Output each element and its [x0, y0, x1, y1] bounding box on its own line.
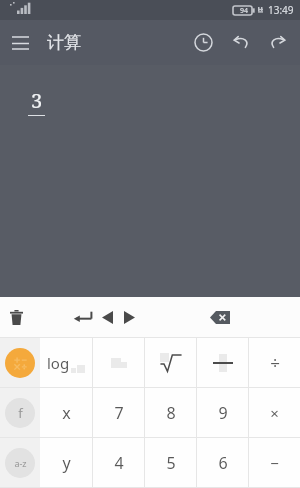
button[interactable]: 5 — [145, 438, 196, 487]
staticText: y — [62, 452, 71, 474]
staticText: 9 — [218, 402, 228, 424]
staticText: x — [62, 402, 71, 424]
button[interactable]: Undo — [222, 20, 259, 65]
staticText: 6 — [218, 452, 228, 474]
staticText: × — [270, 403, 279, 423]
button[interactable]: log — [40, 338, 92, 387]
button[interactable]: x — [40, 388, 92, 437]
button[interactable]: Delete all — [0, 297, 33, 337]
staticText: 8 — [166, 402, 176, 424]
staticText: f — [18, 404, 23, 422]
button[interactable]: − — [249, 438, 300, 487]
button[interactable]: Backspace — [140, 297, 300, 337]
button[interactable] — [197, 338, 248, 387]
staticText: 7 — [114, 402, 124, 424]
button[interactable]: History — [185, 20, 222, 65]
button[interactable]: y — [40, 438, 92, 487]
button[interactable]: Menu — [0, 23, 40, 63]
button[interactable]: a-z — [5, 448, 35, 478]
button[interactable]: 4 — [93, 438, 144, 487]
button[interactable]: 6 — [197, 438, 248, 487]
button[interactable]: 8 — [145, 388, 196, 437]
staticText: 5 — [166, 452, 176, 474]
staticText: 计算 — [47, 32, 81, 53]
button[interactable] — [93, 338, 144, 387]
staticText: 4 — [114, 452, 124, 474]
button[interactable]: Move left — [96, 297, 118, 337]
button[interactable] — [145, 338, 196, 387]
staticText: ÷ — [270, 351, 280, 374]
button[interactable]: ÷ — [249, 338, 300, 387]
staticText: 3 — [31, 87, 43, 114]
staticText: 13:49 — [268, 3, 294, 17]
button[interactable]: Enter — [69, 297, 96, 337]
staticText: log — [47, 353, 70, 373]
staticText: 94 — [240, 6, 249, 16]
button[interactable]: f — [5, 398, 35, 428]
button[interactable]: × — [249, 388, 300, 437]
button[interactable]: 9 — [197, 388, 248, 437]
button[interactable]: Operators — [5, 348, 35, 378]
button[interactable]: 7 — [93, 388, 144, 437]
staticText: − — [270, 453, 279, 473]
button[interactable]: Move right — [118, 297, 140, 337]
button[interactable]: Redo — [259, 20, 296, 65]
staticText: a-z — [14, 457, 27, 469]
